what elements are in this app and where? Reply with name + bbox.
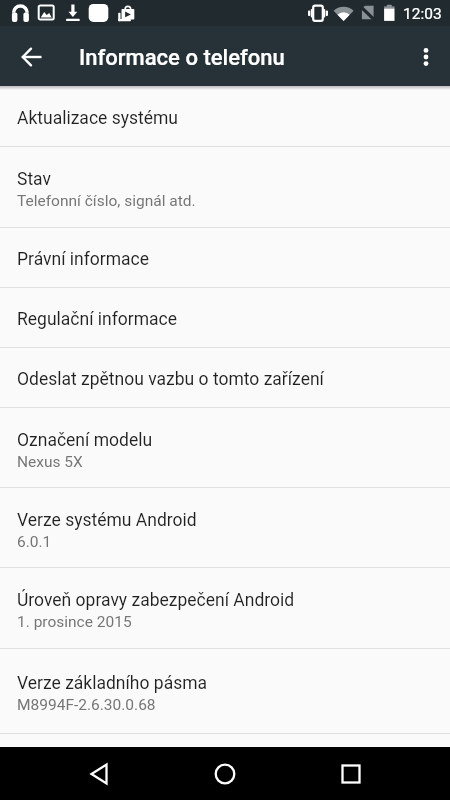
button[interactable]: Označení modelu [0,408,450,487]
staticText: 6.0.1 [17,533,52,551]
staticText: 12:03 [403,5,442,23]
staticText: Právní informace [17,249,150,270]
staticText: M8994F-2.6.30.0.68 [17,696,156,714]
staticText: Verze systému Android [17,510,197,531]
staticText: Nexus 5X [17,453,83,471]
staticText: Označení modelu [17,430,153,451]
button[interactable]: More options [402,33,450,81]
staticText: Informace o telefonu [79,45,285,71]
button[interactable]: Navigate up [8,33,56,81]
staticText: Verze základního pásma [17,673,208,694]
button[interactable]: Verze základního pásma [0,649,450,733]
button[interactable]: Regulační informace [0,288,450,347]
button[interactable]: Stav [0,147,450,227]
button[interactable]: Recent apps [328,751,374,797]
button[interactable]: Právní informace [0,228,450,287]
staticText: Aktualizace systému [17,108,179,129]
staticText: Úroveň opravy zabezpečení Android [17,590,295,611]
button[interactable]: Úroveň opravy zabezpečení Android [0,568,450,648]
button[interactable]: Aktualizace systému [0,86,450,146]
staticText: 1. prosince 2015 [17,613,132,631]
button[interactable]: Verze systému Android [0,488,450,567]
button[interactable]: Home [202,751,248,797]
staticText: Telefonní číslo, signál atd. [17,192,196,210]
staticText: Stav [17,169,51,190]
button[interactable]: Back [78,751,124,797]
button[interactable]: Odeslat zpětnou vazbu o tomto zařízení [0,348,450,407]
staticText: Regulační informace [17,309,178,330]
staticText: Odeslat zpětnou vazbu o tomto zařízení [17,369,324,390]
